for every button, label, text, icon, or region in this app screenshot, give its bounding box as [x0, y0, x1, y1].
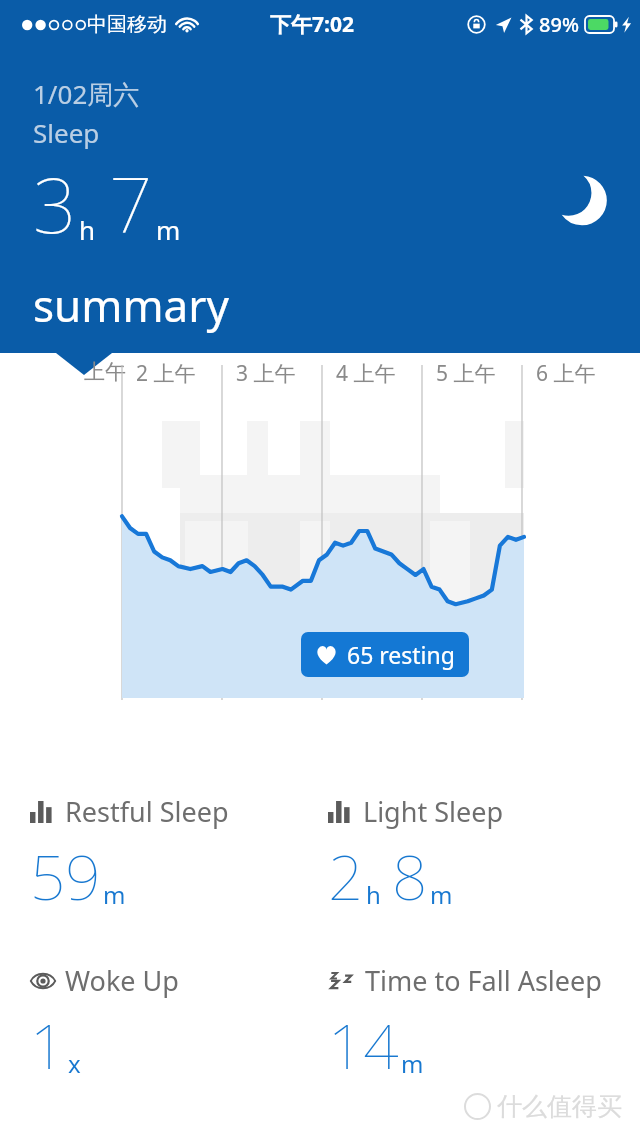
staticText: Restful Sleep — [65, 793, 229, 830]
staticText: Time to Fall Asleep — [365, 962, 602, 999]
staticText: 4 上午 — [336, 359, 396, 388]
staticText: h — [366, 878, 381, 911]
staticText: summary — [33, 275, 229, 335]
staticText: Light Sleep — [363, 793, 504, 830]
staticText: 中国移动 — [87, 12, 167, 37]
staticText: 3 上午 — [236, 359, 296, 388]
staticText: 90 — [30, 896, 55, 925]
staticText: 5 上午 — [436, 359, 496, 388]
other: Sleep — [546, 163, 618, 235]
staticText: 下午7:02 — [270, 10, 354, 39]
staticText: 60 — [30, 1034, 55, 1063]
button[interactable]: 65 resting — [301, 632, 469, 677]
staticText: m — [401, 1047, 424, 1080]
staticText: 65 resting — [347, 639, 455, 670]
staticText: Sleep — [33, 115, 100, 150]
staticText: 3 — [33, 152, 77, 256]
staticText: 6 上午 — [536, 359, 596, 388]
button[interactable]: Time to Fall Asleep — [328, 962, 640, 1087]
staticText: 8 — [392, 834, 428, 918]
staticText: 7 — [109, 152, 153, 256]
staticText: 2 — [328, 834, 364, 918]
button[interactable]: Woke Up — [30, 962, 320, 1087]
staticText: 1/02周六 — [33, 76, 140, 112]
staticText: Woke Up — [65, 962, 179, 999]
staticText: 上午 — [84, 359, 126, 385]
button[interactable]: 1/02周六 — [0, 48, 640, 353]
staticText: 1 — [30, 1003, 66, 1087]
staticText: h — [79, 212, 96, 247]
staticText: 14 — [328, 1003, 399, 1087]
staticText: m — [430, 878, 453, 911]
staticText: 89% — [539, 11, 579, 38]
button[interactable]: Restful Sleep — [30, 793, 320, 918]
staticText: 2 上午 — [136, 359, 196, 388]
staticText: m — [156, 212, 181, 247]
staticText: x — [68, 1047, 81, 1080]
button[interactable]: Light Sleep — [328, 793, 640, 918]
staticText: m — [103, 878, 126, 911]
staticText: 什么值得买 — [497, 1091, 622, 1122]
staticText: 75 — [30, 965, 55, 994]
staticText: 59 — [30, 834, 101, 918]
